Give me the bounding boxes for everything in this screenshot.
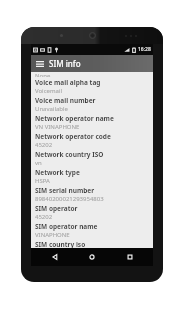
button[interactable]: Home bbox=[78, 248, 106, 266]
button[interactable]: Network operator code bbox=[35, 131, 149, 149]
button[interactable]: Network operator name bbox=[35, 113, 149, 131]
staticText: Voice mail alpha tag bbox=[35, 78, 101, 87]
button[interactable]: Network country ISO bbox=[35, 149, 149, 167]
staticText: SIM serial number bbox=[35, 186, 95, 195]
staticText: 45202 bbox=[35, 141, 53, 149]
staticText: Network operator name bbox=[35, 114, 114, 123]
staticText: 89840200021293954803 bbox=[35, 195, 104, 203]
button[interactable]: SIM serial number bbox=[35, 185, 149, 203]
staticText: Network operator code bbox=[35, 132, 111, 141]
staticText: SIM operator bbox=[35, 204, 78, 213]
staticText: SIM info bbox=[49, 58, 81, 69]
staticText: SIM country iso bbox=[35, 240, 86, 248]
button[interactable]: Voice mail number bbox=[35, 95, 149, 113]
staticText: SIM operator name bbox=[35, 222, 98, 231]
button[interactable]: Back bbox=[41, 248, 69, 266]
staticText: Network type bbox=[35, 168, 80, 177]
staticText: 16:28 bbox=[138, 46, 151, 53]
staticText: Voice mail number bbox=[35, 96, 96, 105]
staticText: VN VINAPHONE bbox=[35, 123, 80, 131]
button[interactable]: SIM operator name bbox=[35, 221, 149, 239]
button[interactable]: Voice mail alpha tag bbox=[35, 77, 149, 95]
button[interactable]: Network type bbox=[35, 167, 149, 185]
staticText: Voicemail bbox=[35, 87, 62, 95]
staticText: VINAPHONE bbox=[35, 231, 70, 239]
staticText: 45202 bbox=[35, 213, 53, 221]
staticText: Network country ISO bbox=[35, 150, 104, 159]
staticText: vn bbox=[35, 159, 42, 167]
staticText: HSPA bbox=[35, 177, 50, 185]
button[interactable]: None bbox=[35, 72, 149, 77]
staticText: None bbox=[35, 72, 51, 77]
button[interactable]: SIM country iso bbox=[35, 239, 149, 248]
staticText: Unavailable bbox=[35, 105, 68, 113]
button[interactable]: Open navigation drawer bbox=[33, 57, 46, 70]
button[interactable]: SIM operator bbox=[35, 203, 149, 221]
button[interactable]: Recent apps bbox=[116, 248, 144, 266]
